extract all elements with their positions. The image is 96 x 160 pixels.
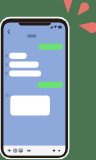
- button[interactable]: Chat app illustration: [0, 0, 96, 160]
